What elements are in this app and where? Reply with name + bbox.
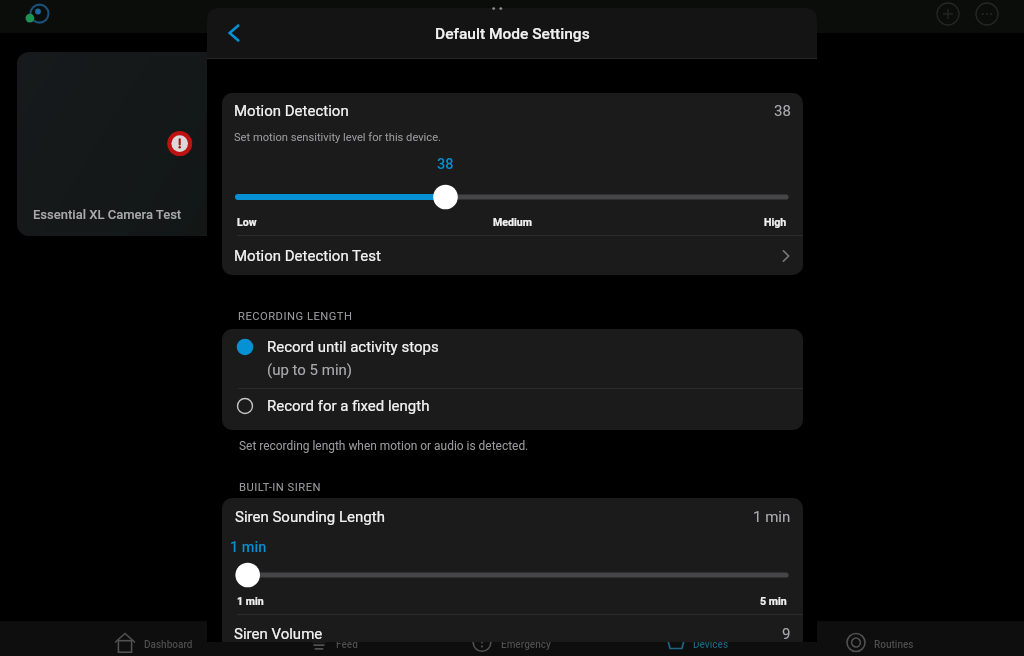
staticText: 38 (774, 102, 791, 120)
button[interactable]: More options (973, 0, 1001, 28)
button[interactable]: Motion sensitivity slider (238, 184, 792, 210)
staticText: 1 min (230, 539, 267, 556)
staticText: Medium (493, 216, 532, 228)
staticText: 5 min (760, 595, 787, 607)
staticText: Routines (874, 639, 914, 651)
staticText: 9 (782, 625, 791, 642)
staticText: RECORDING LENGTH (238, 310, 353, 323)
staticText: Devices (693, 639, 729, 651)
staticText: Siren Sounding Length (235, 508, 385, 526)
button[interactable]: Siren Volume (222, 615, 803, 642)
button[interactable]: Add (934, 0, 962, 28)
staticText: Motion Detection Test (234, 247, 381, 265)
button[interactable]: Devices (660, 628, 747, 656)
button[interactable]: Record for a fixed length (222, 389, 803, 429)
button[interactable]: Motion Detection Test (222, 236, 803, 275)
staticText: Record until activity stops (267, 338, 439, 356)
button[interactable]: Siren sounding length slider (238, 562, 792, 588)
button[interactable]: Dashboard (109, 628, 198, 656)
staticText: Dashboard (144, 639, 193, 651)
button[interactable]: Routines (840, 628, 928, 656)
button[interactable]: Essential XL Camera Test (17, 52, 333, 236)
staticText: Siren Volume (234, 625, 323, 642)
staticText: 38 (437, 156, 454, 173)
staticText: 1 min (753, 508, 791, 526)
button[interactable]: Profile (25, 1, 53, 29)
staticText: Essential XL Camera Test (33, 207, 182, 222)
staticText: High (764, 216, 787, 228)
staticText: Record for a fixed length (267, 397, 430, 415)
staticText: Emergency (501, 639, 551, 651)
staticText: Default Mode Settings (435, 25, 590, 43)
staticText: Set recording length when motion or audi… (239, 439, 529, 453)
staticText: Low (237, 216, 257, 228)
button[interactable]: Emergency (466, 628, 555, 656)
staticText: 1 min (237, 595, 264, 607)
staticText: (up to 5 min) (267, 361, 353, 379)
staticText: Set motion sensitivity level for this de… (234, 131, 442, 144)
button[interactable]: Back (214, 13, 254, 53)
staticText: Motion Detection (234, 102, 349, 120)
staticText: Feed (336, 639, 358, 651)
button[interactable]: Record until activity stops (222, 329, 803, 388)
staticText: BUILT-IN SIREN (239, 481, 322, 494)
button[interactable]: Feed (303, 628, 390, 656)
